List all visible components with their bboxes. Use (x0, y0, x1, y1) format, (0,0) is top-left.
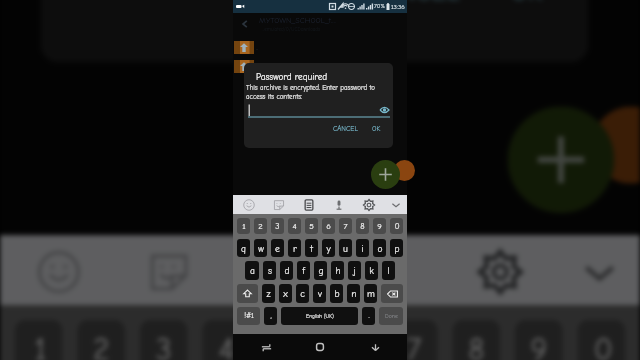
button[interactable]: 1 (15, 320, 62, 360)
button[interactable]: v (313, 284, 326, 303)
button[interactable]: p (390, 239, 403, 257)
button[interactable]: 8 (356, 218, 369, 234)
button[interactable]: d (280, 261, 293, 280)
button[interactable]: n (347, 284, 360, 303)
staticText: y (326, 243, 331, 254)
button[interactable]: 6 (322, 218, 335, 234)
button[interactable]: Hide keyboard (353, 334, 397, 360)
staticText: e (275, 243, 280, 254)
button[interactable]: Add (508, 106, 614, 213)
button[interactable]: Collapse (384, 195, 407, 214)
button[interactable]: m (364, 284, 377, 303)
button[interactable]: Done (379, 307, 403, 325)
button[interactable]: , (264, 307, 277, 325)
button[interactable]: c (296, 284, 309, 303)
staticText: 6 (326, 221, 331, 231)
button[interactable]: Recent apps (244, 334, 288, 360)
button[interactable]: 5 (265, 320, 313, 360)
button[interactable]: 3 (271, 218, 284, 234)
staticText: h (335, 265, 341, 276)
staticText: i (361, 243, 364, 254)
button[interactable]: Clipboard (294, 195, 324, 214)
staticText: o (377, 243, 383, 254)
staticText: l (387, 265, 390, 276)
button[interactable]: Back (238, 17, 252, 31)
button[interactable]: 5 (305, 218, 318, 234)
staticText: k (369, 265, 374, 276)
button[interactable]: q (237, 239, 250, 257)
button[interactable]: Shift (237, 284, 258, 303)
staticText: v (318, 288, 322, 299)
button[interactable]: o (373, 239, 386, 257)
staticText: 3 (275, 221, 280, 231)
staticText: f (302, 265, 305, 276)
button[interactable]: i (356, 239, 369, 257)
button[interactable]: z (262, 284, 275, 303)
button[interactable]: 6 (327, 320, 375, 360)
button[interactable]: 2 (254, 218, 267, 234)
button[interactable]: w (254, 239, 267, 257)
button[interactable]: Voice (335, 235, 445, 305)
button[interactable]: Add (371, 160, 400, 189)
button[interactable]: f (297, 261, 310, 280)
button[interactable]: 7 (339, 218, 352, 234)
button[interactable]: CANCEL (330, 123, 361, 135)
button[interactable]: 4 (202, 320, 250, 360)
button[interactable]: 0 (390, 218, 403, 234)
button[interactable]: 2 (77, 320, 125, 360)
button[interactable]: g (314, 261, 327, 280)
button[interactable]: Clipboard (224, 235, 335, 305)
button[interactable]: r (288, 239, 301, 257)
button[interactable]: h (331, 261, 344, 280)
staticText: z (266, 288, 271, 299)
button[interactable]: 4 (288, 218, 301, 234)
button[interactable]: 9 (373, 218, 386, 234)
staticText: CANCEL (333, 125, 358, 133)
staticText: 5 (279, 331, 298, 360)
button[interactable]: 3 (140, 320, 188, 360)
button[interactable]: Sticker (264, 195, 294, 214)
button[interactable]: k (365, 261, 378, 280)
button[interactable]: OK (369, 123, 384, 135)
button[interactable]: !#1 (237, 307, 260, 325)
button[interactable]: 0 (577, 320, 625, 360)
button[interactable]: e (271, 239, 284, 257)
button[interactable]: Emoji (233, 195, 264, 214)
button[interactable]: a (245, 261, 259, 280)
button[interactable]: Emoji (0, 235, 114, 305)
button[interactable]: CANCEL (357, 0, 471, 14)
button[interactable]: j (348, 261, 361, 280)
button[interactable]: 8 (452, 320, 500, 360)
button[interactable]: . (362, 307, 375, 325)
button[interactable]: y (322, 239, 335, 257)
staticText: 2 (258, 221, 263, 231)
staticText: CANCEL (368, 0, 460, 7)
button[interactable]: u (339, 239, 352, 257)
staticText: 1 (242, 221, 246, 231)
button[interactable]: l (382, 261, 395, 280)
button[interactable]: x (279, 284, 292, 303)
button[interactable]: b (330, 284, 343, 303)
button[interactable]: Sticker (114, 235, 224, 305)
button[interactable]: Home (298, 334, 342, 360)
button[interactable]: Settings (354, 195, 384, 214)
staticText: p (394, 243, 400, 254)
button[interactable]: 7 (390, 320, 438, 360)
staticText: g (318, 265, 324, 276)
button[interactable]: 9 (515, 320, 563, 360)
staticText: w (258, 243, 264, 254)
staticText: !#1 (244, 312, 254, 320)
button[interactable]: Collapse (555, 235, 640, 305)
button[interactable]: Backspace (381, 284, 403, 303)
staticText: m (367, 288, 375, 299)
button[interactable]: English (UK) (281, 307, 358, 325)
button[interactable]: Voice (324, 195, 354, 214)
button[interactable]: 1 (237, 218, 250, 234)
staticText: OK (511, 0, 544, 7)
button[interactable]: t (305, 239, 318, 257)
button[interactable]: Settings (445, 235, 555, 305)
button[interactable]: s (263, 261, 276, 280)
staticText: q (241, 243, 246, 254)
